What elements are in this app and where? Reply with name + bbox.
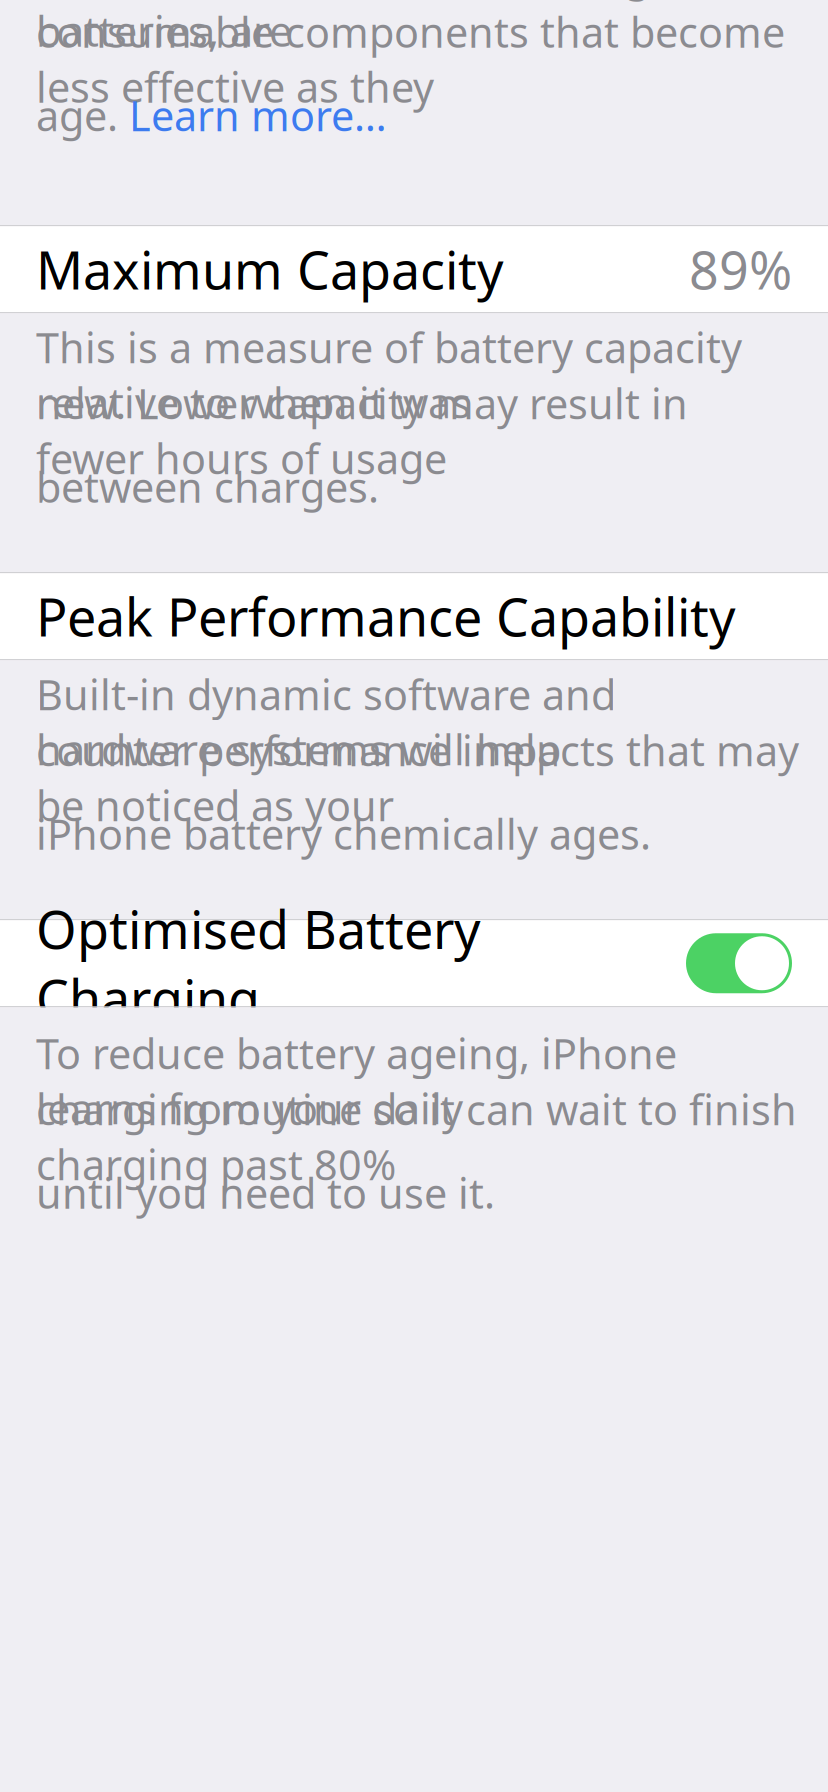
staticText: 89% [689,235,792,304]
staticText: Built-in dynamic software and hardware s… [36,667,616,777]
button[interactable]: Maximum Capacity [0,226,828,312]
staticText: iPhone battery chemically ages. [36,806,651,861]
staticText: Phone batteries, like all rechargeable b… [36,0,755,58]
staticText: Maximum Capacity [36,235,504,304]
staticText: until you need to use it. [36,1165,495,1220]
staticText: This is a measure of battery capacity re… [36,320,742,430]
staticText: Learn more… [129,88,387,143]
button[interactable]: Learn more… [129,88,387,143]
staticText: charging routine so it can wait to finis… [36,1082,797,1192]
staticText: Peak Performance Capability [36,582,736,651]
staticText: age. [36,88,129,143]
staticText: counter performance impacts that may be … [36,723,799,833]
staticText: To reduce battery ageing, iPhone learns … [36,1026,677,1136]
button[interactable]: Peak Performance Capability [0,573,828,659]
staticText: new. Lower capacity may result in fewer … [36,376,688,486]
staticText: Optimised Battery Charging [36,894,481,1032]
staticText: consumable components that become less e… [36,4,785,114]
staticText: between charges. [36,459,379,514]
button[interactable]: Optimised Battery Charging [0,920,828,1006]
